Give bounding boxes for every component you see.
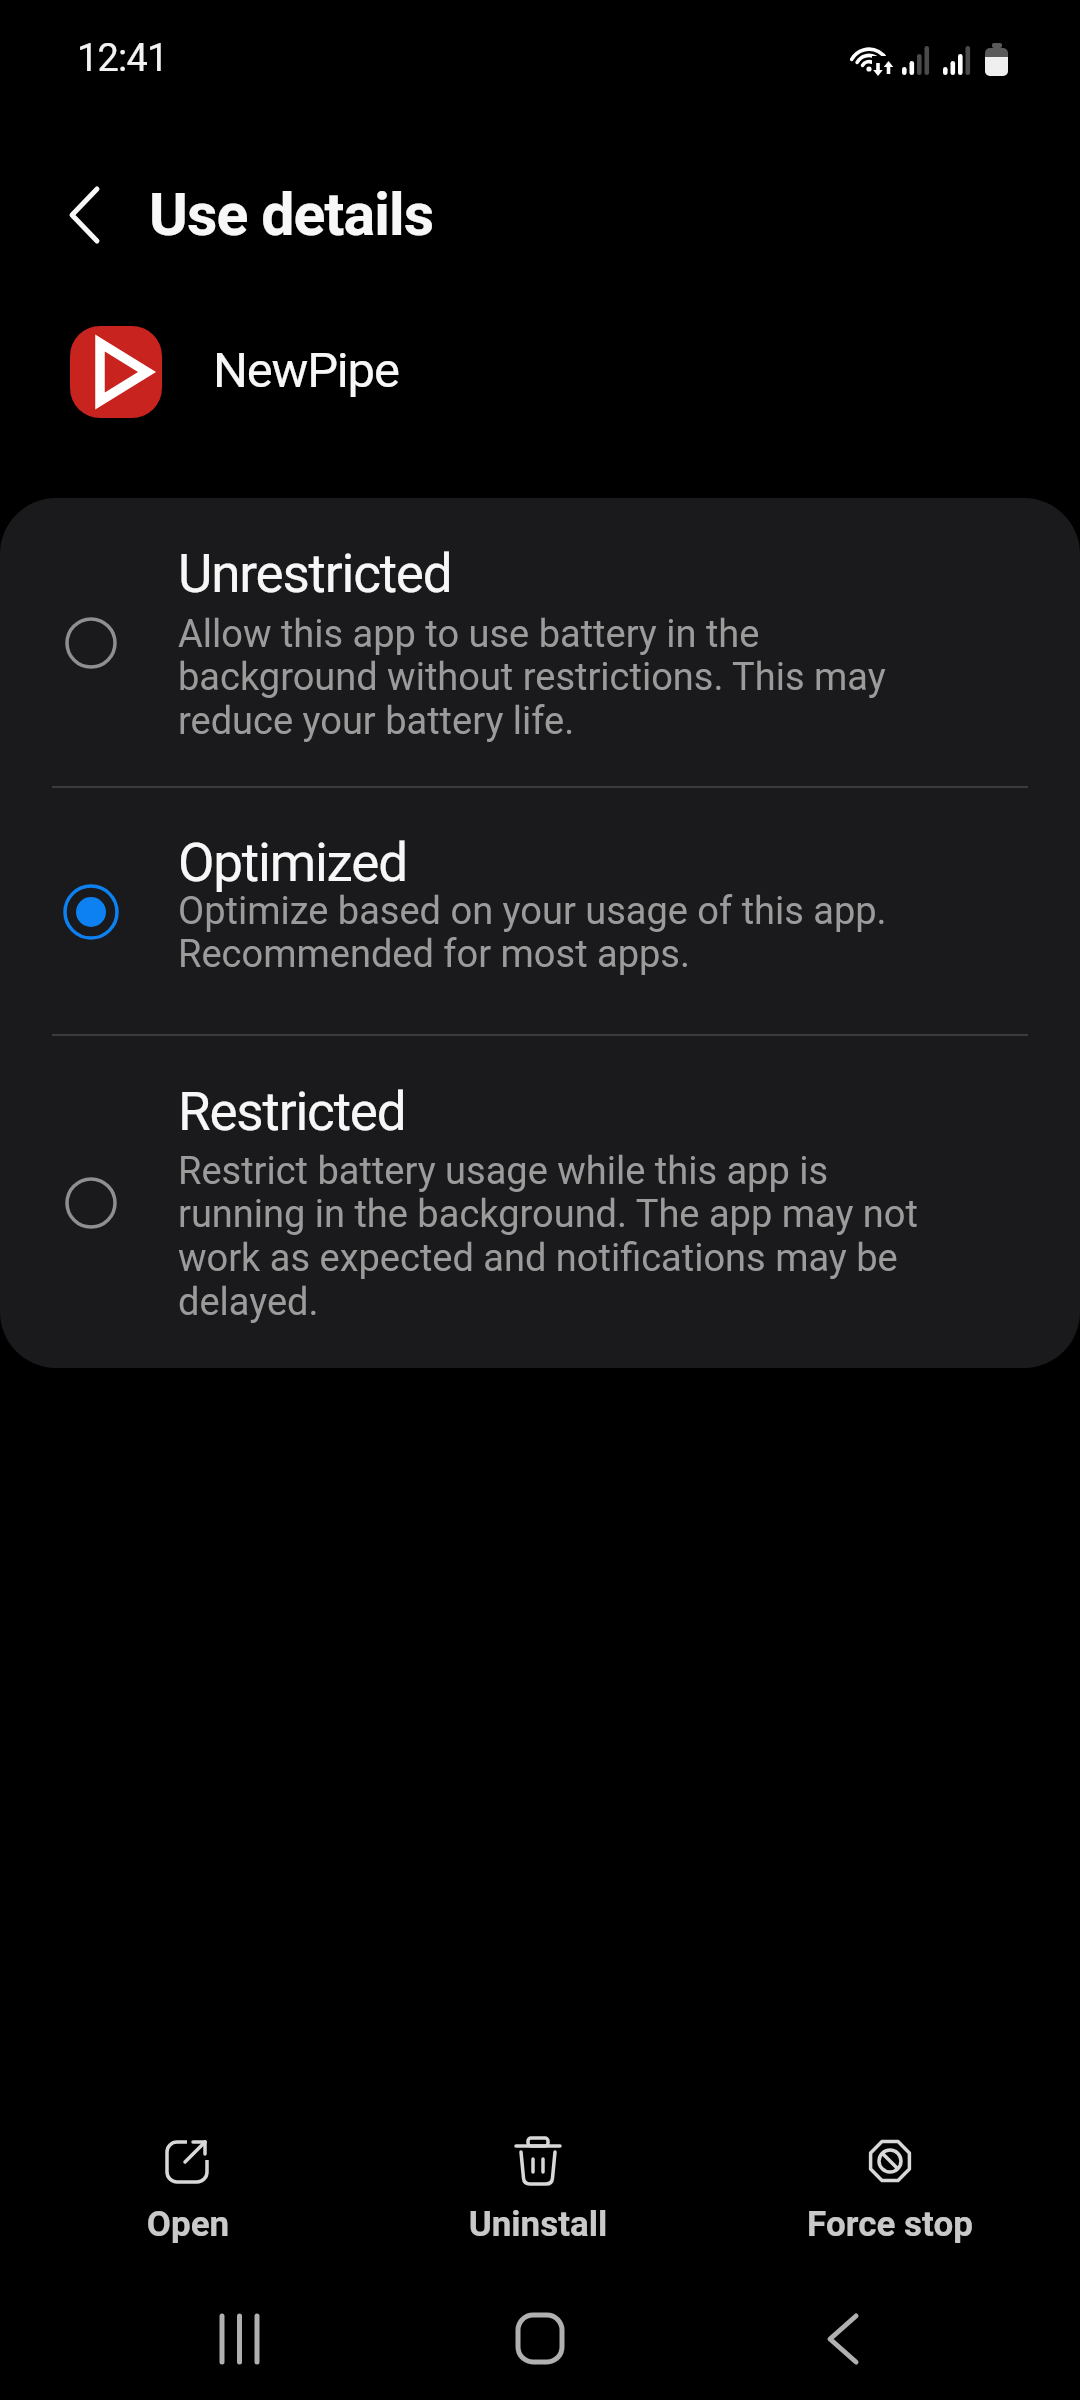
staticText: Optimize based on your usage of this app… (178, 889, 887, 977)
staticText: Restrict battery usage while this app is… (178, 1149, 918, 1325)
staticText: Uninstall (418, 2204, 658, 2245)
staticText: Open (68, 2204, 308, 2245)
staticText: Restricted (178, 1081, 406, 1143)
button[interactable] (175, 2290, 305, 2390)
button[interactable] (475, 2290, 605, 2390)
button[interactable] (0, 1050, 1080, 1360)
staticText: 12:41 (77, 36, 168, 81)
staticText: Allow this app to use battery in the bac… (178, 612, 886, 744)
staticText: Optimized (178, 832, 407, 894)
button[interactable] (775, 2290, 905, 2390)
button[interactable] (52, 175, 122, 255)
staticText: Unrestricted (178, 543, 452, 605)
button[interactable] (0, 800, 1080, 1030)
staticText: NewPipe (213, 342, 399, 399)
staticText: Use details (149, 180, 434, 249)
button[interactable] (0, 530, 1080, 780)
staticText: Force stop (770, 2204, 1010, 2245)
button[interactable]: Open (68, 2115, 308, 2260)
button[interactable]: Force stop (770, 2115, 1010, 2260)
button[interactable]: Uninstall (418, 2115, 658, 2260)
